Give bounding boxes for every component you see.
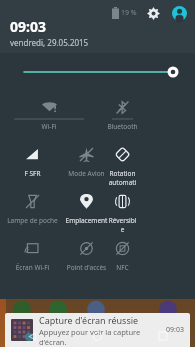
button[interactable]: Écran Wi-Fi <box>0 236 65 283</box>
staticText: Wi-Fi <box>0 122 98 131</box>
button[interactable]: Accueil <box>65 325 130 347</box>
staticText: vendredi, 29.05.2015 <box>10 37 89 48</box>
button[interactable]: Mode Avion <box>65 142 108 189</box>
button[interactable]: Wi-Fi <box>0 95 98 142</box>
button[interactable]: Luminosité <box>0 57 195 87</box>
staticText: F SFR <box>0 169 65 178</box>
button[interactable]: Emplacement <box>65 189 108 236</box>
button[interactable]: Lampe de poche <box>0 189 65 236</box>
button[interactable]: Bluetooth <box>98 95 147 142</box>
staticText: Lampe de poche <box>0 216 65 225</box>
button[interactable]: Utilisateur <box>171 5 187 21</box>
staticText: 09:03 <box>10 17 46 36</box>
button[interactable]: Point d'accès <box>65 236 108 283</box>
button[interactable]: Capture d'écran réussie <box>5 313 190 347</box>
staticText: Écran Wi-Fi <box>0 263 65 272</box>
staticText: NFC <box>108 263 137 272</box>
button[interactable]: Réversible <box>108 189 137 236</box>
staticText: 09:03 <box>166 325 184 335</box>
button[interactable]: Paramètres <box>146 6 161 21</box>
staticText: Réversible <box>108 216 137 234</box>
staticText: 19 % <box>121 8 137 18</box>
button[interactable]: F SFR <box>0 142 65 189</box>
button[interactable]: Retour <box>0 325 65 347</box>
staticText: Emplacement <box>65 216 108 225</box>
staticText: Rotation automatique <box>108 169 137 189</box>
button[interactable]: Rotation automatique <box>108 142 137 189</box>
staticText: Bluetooth <box>98 122 147 131</box>
button[interactable]: Applications récentes <box>130 325 195 347</box>
staticText: Point d'accès <box>65 263 108 272</box>
staticText: Mode Avion <box>65 169 108 178</box>
button[interactable]: NFC <box>108 236 137 283</box>
staticText: Appuyez pour voir la capture d'écran. <box>39 327 166 347</box>
staticText: Capture d'écran réussie <box>39 314 139 326</box>
